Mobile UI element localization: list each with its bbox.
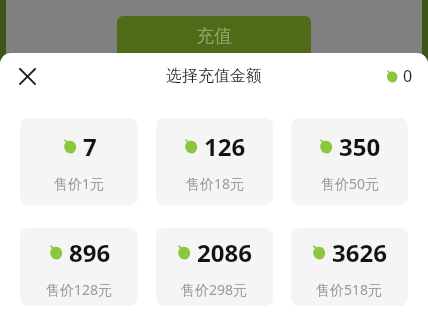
staticText: 充值 [196,25,232,48]
button[interactable]: Close [10,59,44,93]
button[interactable]: 充值 [117,16,311,62]
staticText: 选择充值金额 [166,66,262,86]
button[interactable]: 896 [20,228,138,306]
staticText: 126 [204,130,246,163]
staticText: 售价298元 [181,280,248,299]
staticText: 0 [403,65,413,87]
staticText: 7 [83,130,97,163]
staticText: 售价18元 [186,174,245,193]
staticText: 售价518元 [316,280,383,299]
staticText: 售价128元 [46,280,113,299]
staticText: 3626 [332,236,387,269]
staticText: 350 [339,130,381,163]
staticText: 售价50元 [321,174,380,193]
button[interactable]: 7 [20,118,138,205]
staticText: 2086 [197,236,252,269]
staticText: 售价1元 [54,174,105,193]
button[interactable]: 3626 [291,228,408,306]
button[interactable]: 350 [291,118,408,205]
button[interactable]: 126 [156,118,273,205]
button[interactable]: 2086 [156,228,273,306]
staticText: 896 [69,236,111,269]
button[interactable]: 0 [386,65,413,87]
